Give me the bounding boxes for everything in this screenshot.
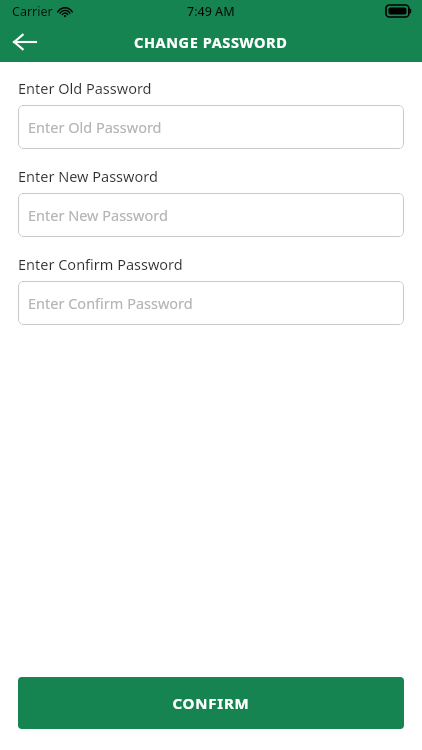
button[interactable]: Back: [0, 22, 48, 62]
button[interactable]: Enter New Password: [18, 193, 404, 237]
staticText: Enter Old Password: [28, 117, 162, 137]
staticText: 7:49 AM: [187, 3, 235, 20]
staticText: Enter New Password: [28, 205, 168, 225]
staticText: Carrier: [12, 3, 53, 20]
button[interactable]: CONFIRM: [18, 677, 404, 729]
staticText: Enter Confirm Password: [28, 293, 193, 313]
button[interactable]: Enter Old Password: [18, 105, 404, 149]
staticText: Enter Confirm Password: [18, 254, 183, 274]
button[interactable]: Enter Confirm Password: [18, 281, 404, 325]
staticText: Enter Old Password: [18, 78, 152, 98]
staticText: CONFIRM: [172, 693, 250, 713]
staticText: Enter New Password: [18, 166, 158, 186]
staticText: CHANGE PASSWORD: [134, 32, 288, 52]
